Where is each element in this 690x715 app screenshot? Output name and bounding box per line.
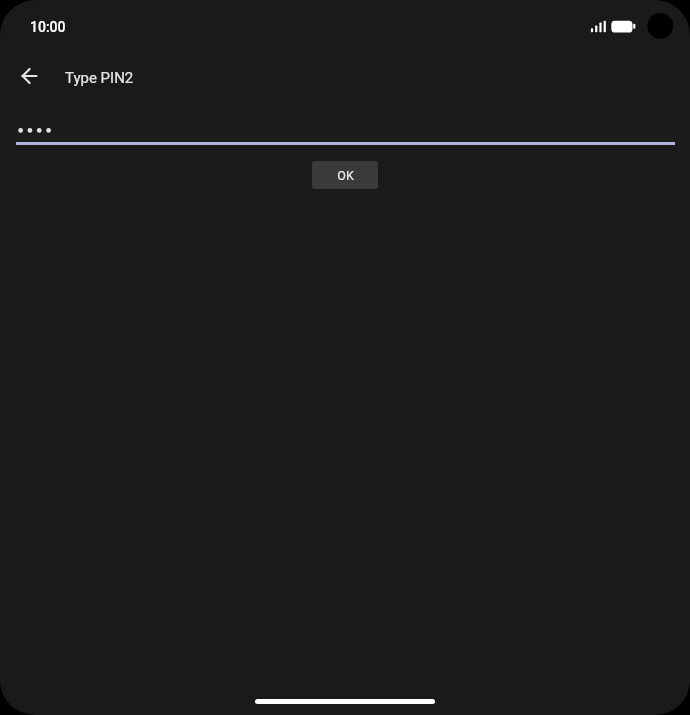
button[interactable]: PIN2 entry field <box>0 98 690 144</box>
other: Battery full <box>610 20 636 33</box>
button[interactable]: OK <box>312 161 378 189</box>
button[interactable]: Navigate up <box>9 56 49 96</box>
staticText: Type PIN2 <box>65 69 134 87</box>
other: Signal strength <box>590 20 606 33</box>
staticText: OK <box>337 168 354 183</box>
staticText: 10:00 <box>30 19 66 35</box>
